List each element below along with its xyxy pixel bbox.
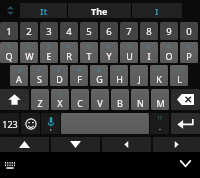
staticText: ( [178, 66, 180, 73]
button[interactable]: Move down [51, 137, 100, 152]
button[interactable]: - [130, 65, 148, 86]
staticText: 3 [46, 25, 52, 38]
staticText: 6 [106, 25, 112, 38]
button[interactable]: 0 [180, 22, 198, 40]
staticText: D [56, 73, 63, 85]
button[interactable]: Move right [153, 137, 200, 152]
button[interactable]: V [91, 89, 109, 110]
button[interactable]: 2 [20, 42, 38, 63]
button[interactable]: 9 [160, 22, 178, 40]
staticText: B [117, 97, 123, 109]
button[interactable]: 6 [100, 42, 118, 63]
button[interactable]: 3 [40, 42, 58, 63]
staticText: W [25, 50, 34, 62]
button[interactable]: It [20, 3, 67, 18]
button[interactable]: M [151, 89, 169, 110]
staticText: . [159, 123, 161, 133]
staticText: , [50, 123, 52, 133]
staticText: 8 [146, 25, 152, 38]
button[interactable]: B [111, 89, 129, 110]
button[interactable]: ( [170, 65, 188, 86]
staticText: It [40, 5, 48, 17]
button[interactable]: Move left [102, 137, 151, 152]
button[interactable]: Space [61, 113, 149, 134]
button[interactable]: 2 [20, 22, 38, 40]
button[interactable]: Move up [0, 137, 49, 152]
button[interactable]: 7 [120, 42, 138, 63]
button[interactable]: 1 [0, 42, 18, 63]
staticText: 7 [126, 25, 132, 38]
staticText: & [97, 66, 102, 73]
staticText: × [58, 90, 62, 97]
staticText: 5 [86, 25, 92, 38]
staticText: I [155, 5, 159, 17]
button[interactable]: 5 [80, 22, 98, 40]
button[interactable]: Period [150, 113, 169, 134]
staticText: O [165, 50, 173, 62]
button[interactable]: * [110, 65, 128, 86]
staticText: Y [106, 50, 112, 62]
staticText: 4 [66, 25, 72, 38]
staticText: Z [37, 97, 43, 109]
button[interactable]: % [70, 65, 88, 86]
staticText: P [186, 50, 192, 62]
staticText: 1 [6, 25, 12, 38]
button[interactable]: 4 [60, 22, 78, 40]
staticText: 4 [67, 43, 71, 50]
button[interactable]: 7 [120, 22, 138, 40]
button[interactable]: 5 [80, 42, 98, 63]
button[interactable]: Z [31, 89, 49, 110]
button[interactable]: 8 [140, 22, 158, 40]
staticText: G [96, 73, 103, 85]
staticText: 0 [187, 43, 191, 50]
button[interactable]: Hide keyboard [175, 154, 195, 172]
button[interactable]: Emoji [21, 113, 40, 134]
staticText: K [156, 73, 162, 85]
staticText: 8 [147, 43, 151, 50]
staticText: 0 [186, 25, 192, 38]
button[interactable]: 4 [60, 42, 78, 63]
staticText: X [57, 97, 63, 109]
button[interactable]: I [132, 3, 182, 18]
button[interactable]: 8 [140, 42, 158, 63]
button[interactable]: 3 [40, 22, 58, 40]
staticText: S [37, 73, 42, 85]
button[interactable]: More suggestions [0, 3, 20, 18]
staticText: @ [17, 66, 22, 73]
button[interactable]: N [131, 89, 149, 110]
button[interactable]: Backspace [171, 89, 200, 110]
button[interactable]: Enter [171, 113, 200, 134]
staticText: % [77, 66, 82, 73]
staticText: A [16, 73, 22, 85]
staticText: !? [158, 114, 162, 121]
button[interactable]: 9 [160, 42, 178, 63]
button[interactable]: @ [10, 65, 28, 86]
staticText: C [77, 97, 83, 109]
button[interactable]: C [71, 89, 89, 110]
staticText: # [37, 66, 41, 73]
button[interactable]: Voice input [41, 113, 60, 134]
button[interactable]: & [90, 65, 108, 86]
staticText: R [66, 50, 72, 62]
button[interactable]: # [30, 65, 48, 86]
staticText: N [137, 97, 144, 109]
button[interactable]: Symbols [0, 113, 19, 134]
button[interactable]: Change keyboard [0, 156, 19, 174]
button[interactable]: 1 [0, 22, 18, 40]
button[interactable]: Shift [0, 89, 29, 110]
button[interactable]: × [51, 89, 69, 110]
button[interactable]: The [68, 3, 131, 18]
staticText: 5 [87, 43, 91, 50]
staticText: I [147, 50, 151, 62]
staticText: * [117, 66, 121, 73]
button[interactable]: + [150, 65, 168, 86]
staticText: - [138, 66, 140, 73]
staticText: 2 [26, 25, 32, 38]
button[interactable]: $ [50, 65, 68, 86]
staticText: L [177, 73, 182, 85]
button[interactable]: 6 [100, 22, 118, 40]
staticText: The [91, 5, 108, 17]
staticText: F [77, 73, 82, 85]
button[interactable]: 0 [180, 42, 198, 63]
staticText: V [97, 97, 103, 109]
